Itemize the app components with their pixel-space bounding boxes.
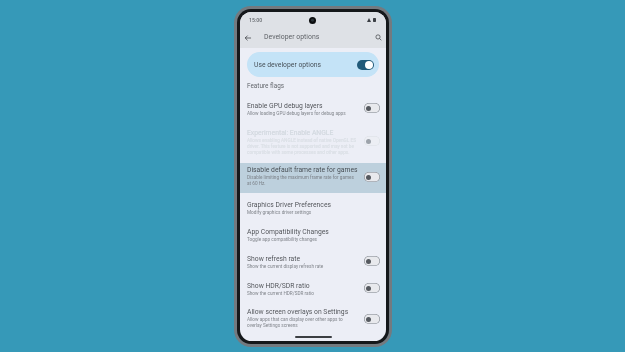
staticText: 15:00	[249, 17, 263, 23]
button[interactable]: Show HDR/SDR ratio	[240, 277, 386, 299]
staticText: at 60 Hz.	[247, 181, 266, 187]
button[interactable]: Use developer options	[247, 52, 379, 77]
button[interactable]: Disable default frame rate for games	[240, 161, 386, 189]
staticText: App Compatibility Changes	[247, 228, 329, 236]
button[interactable]: Use developer options	[357, 60, 374, 70]
staticText: driver. This feature is not supported an…	[247, 144, 354, 150]
button[interactable]: Enable GPU debug layers	[240, 97, 386, 119]
staticText: Allow loading GPU debug layers for debug…	[247, 111, 346, 117]
staticText: Allow screen overlays on Settings	[247, 308, 349, 316]
staticText: Modify graphics driver settings	[247, 210, 312, 216]
button[interactable]: Show HDR/SDR ratio	[364, 283, 380, 293]
staticText: Use developer options	[254, 61, 322, 69]
button[interactable]: Experimental: Enable ANGLE	[240, 124, 386, 159]
staticText: overlay Settings screens	[247, 323, 298, 329]
button[interactable]: Navigate up	[241, 31, 254, 44]
staticText: Show the current HDR/SDR ratio	[247, 291, 314, 297]
button[interactable]: Graphics Driver Preferences	[240, 196, 386, 218]
staticText: Feature flags	[247, 82, 285, 90]
staticText: Disable limiting the maximum frame rate …	[247, 175, 354, 181]
staticText: Show refresh rate	[247, 255, 301, 263]
staticText: Experimental: Enable ANGLE	[247, 129, 334, 137]
staticText: Enable GPU debug layers	[247, 102, 323, 110]
button[interactable]: Show refresh rate	[240, 250, 386, 272]
staticText: Show the current display refresh rate	[247, 264, 324, 270]
staticText: Show HDR/SDR ratio	[247, 282, 310, 290]
staticText: Toggle app compatibility changes	[247, 237, 318, 243]
staticText: Allow apps that can display over other a…	[247, 317, 343, 323]
staticText: Graphics Driver Preferences	[247, 201, 332, 209]
button[interactable]: Enable GPU debug layers	[364, 103, 380, 113]
button[interactable]: Show refresh rate	[364, 256, 380, 266]
button[interactable]: Search	[372, 31, 385, 44]
button[interactable]: App Compatibility Changes	[240, 223, 386, 245]
staticText: Disable default frame rate for games	[247, 166, 358, 174]
staticText: Allows enabling ANGLE instead of native …	[247, 138, 356, 144]
button[interactable]: Disable default frame rate for games	[364, 172, 380, 182]
button[interactable]: Allow screen overlays on Settings	[364, 314, 380, 324]
staticText: Developer options	[264, 33, 320, 41]
staticText: compatible with some processes and other…	[247, 150, 350, 156]
button[interactable]: Experimental: Enable ANGLE	[364, 136, 380, 146]
button[interactable]: Allow screen overlays on Settings	[240, 303, 386, 331]
